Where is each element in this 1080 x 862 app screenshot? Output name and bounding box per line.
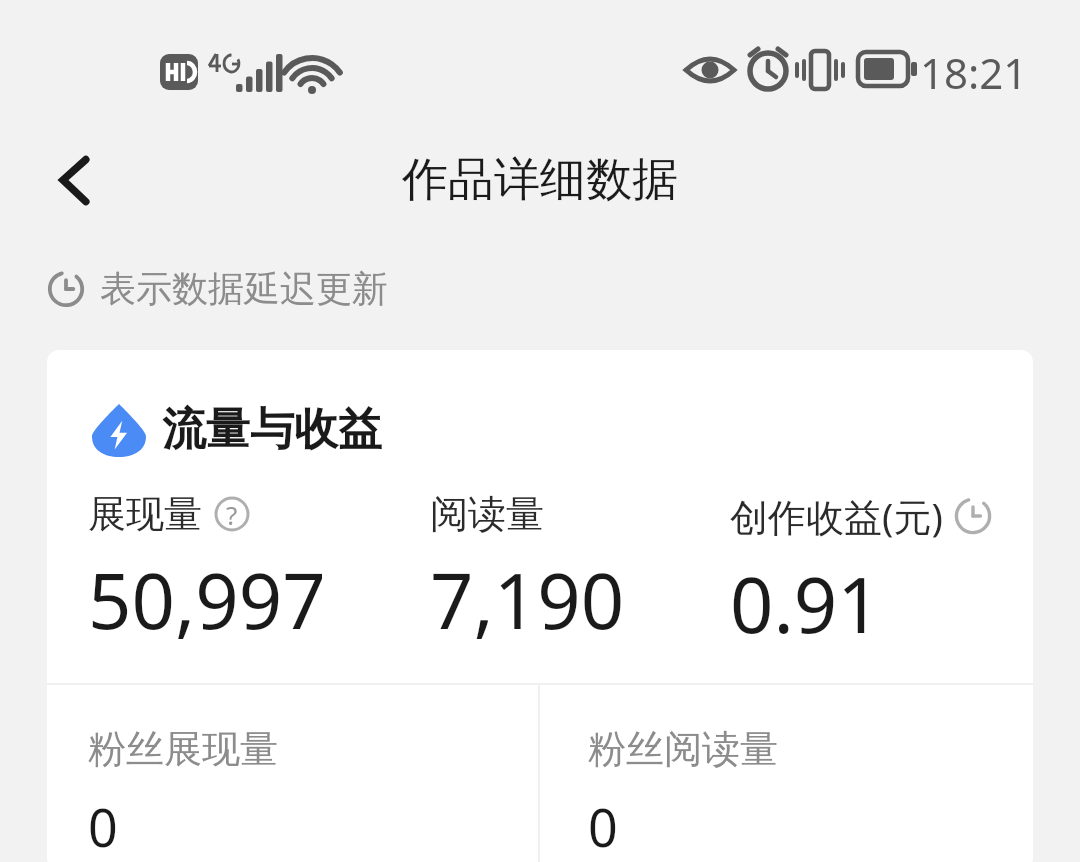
staticText: 展现量 <box>88 490 202 538</box>
staticText: 粉丝展现量 <box>88 725 278 773</box>
staticText: 阅读量 <box>430 490 544 538</box>
staticText: 0 <box>588 791 618 862</box>
staticText: 0 <box>88 791 118 862</box>
button[interactable]: Back <box>20 120 130 240</box>
staticText: 粉丝阅读量 <box>588 725 778 773</box>
staticText: 7,190 <box>430 548 625 652</box>
staticText: ? <box>226 497 238 532</box>
staticText: 50,997 <box>88 548 326 652</box>
staticText: 流量与收益 <box>162 402 382 457</box>
staticText: 表示数据延迟更新 <box>100 266 388 311</box>
staticText: 创作收益(元) <box>730 490 943 542</box>
staticText: 作品详细数据 <box>0 151 1080 209</box>
button[interactable]: Help <box>212 494 252 534</box>
staticText: 18:21 <box>920 44 1028 101</box>
staticText: 0.91 <box>730 552 881 656</box>
